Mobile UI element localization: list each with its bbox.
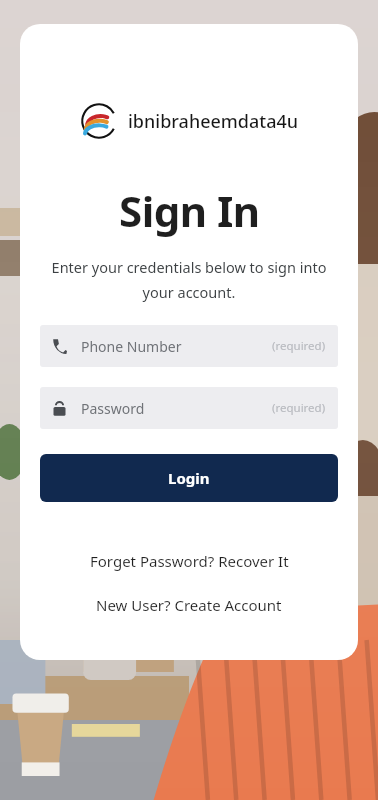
staticText: Password <box>81 399 145 418</box>
button[interactable]: Forget Password? Recover It <box>80 548 299 574</box>
button[interactable]: New User? Create Account <box>86 592 292 618</box>
button[interactable]: Login <box>40 454 338 502</box>
button[interactable]: Phone <box>40 325 338 367</box>
staticText: (required) <box>272 338 326 354</box>
staticText: Phone Number <box>81 337 182 356</box>
staticText: Login <box>168 468 210 488</box>
staticText: Enter your credentials below to sign int… <box>42 257 336 303</box>
staticText: (required) <box>272 400 326 416</box>
staticText: New User? Create Account <box>96 595 282 615</box>
other: Password <box>52 401 67 416</box>
button[interactable]: Password <box>40 387 338 429</box>
staticText: ibnibraheemdata4u <box>128 109 299 134</box>
other: Phone <box>52 339 67 354</box>
staticText: Forget Password? Recover It <box>90 551 289 571</box>
staticText: Sign In <box>119 182 260 239</box>
